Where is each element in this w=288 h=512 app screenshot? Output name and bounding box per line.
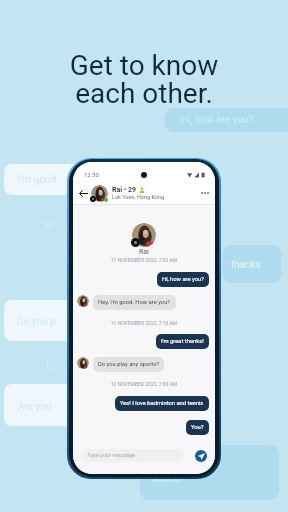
button[interactable]: Yes! I love badminton and tennis [115,396,209,411]
button[interactable]: Back [76,186,90,200]
staticText: thanks [231,259,261,271]
staticText: 12:30 [84,171,99,178]
staticText: Hi, how are you? [181,114,254,126]
staticText: Lok Yuen, Hong Kong [112,194,165,200]
staticText: Do you play any sports? [98,361,159,368]
staticText: Rai • 29 [112,186,137,194]
button[interactable]: Do you play any sports? [93,357,164,372]
staticText: 11 NOVEMBER 2022, 7:02 AM [79,257,209,263]
staticText: Rai [139,248,149,256]
staticText: Are you [18,401,52,413]
staticText: Do you p [17,316,56,328]
button[interactable]: More options [198,186,212,200]
button[interactable]: I'm great thanks! [156,334,209,349]
button[interactable]: Send [195,450,207,462]
staticText: Hey, I'm good. How are you? [98,299,171,306]
staticText: Get to know each other. [0,49,288,110]
button[interactable]: Hey, I'm good. How are you? [93,295,176,310]
staticText: Hi, how are you? [162,276,204,283]
button[interactable]: You? [186,420,209,435]
staticText: I'm great thanks! [161,338,204,345]
staticText: I'm good [18,174,57,186]
button[interactable]: Hi, how are you? [157,272,209,287]
staticText: to play soccer [152,456,183,485]
button[interactable]: Type your message. [80,449,184,462]
staticText: 11 NOVEMBER 2022, 7:10 AM [79,320,209,326]
staticText: You? [191,424,204,431]
staticText: Yes! I love badminton and tennis [120,400,204,407]
staticText: Type your message. [87,452,137,459]
staticText: 12 NOVEMBER 2022, 7:00 AM [79,381,209,387]
